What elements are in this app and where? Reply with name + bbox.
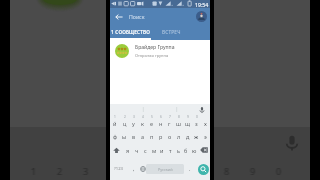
- staticText: ,: [133, 165, 135, 172]
- button[interactable]: х: [201, 115, 210, 129]
- staticText: 3: [82, 165, 88, 175]
- button[interactable]: и: [158, 143, 166, 157]
- staticText: р: [159, 133, 163, 140]
- button[interactable]: м: [150, 143, 158, 157]
- button[interactable]: а: [138, 129, 147, 143]
- button[interactable]: д: [183, 129, 192, 143]
- staticText: 5: [151, 115, 153, 119]
- staticText: ж: [194, 133, 199, 140]
- staticText: у: [132, 120, 135, 127]
- button[interactable]: ?123: [112, 157, 126, 180]
- staticText: 2: [57, 165, 63, 175]
- staticText: 2: [56, 165, 62, 175]
- button[interactable]: Profile: [196, 11, 207, 22]
- button[interactable]: с: [141, 143, 150, 157]
- button[interactable]: в: [129, 129, 138, 143]
- staticText: 9: [249, 165, 255, 175]
- staticText: Брайдер Группа: [135, 44, 175, 51]
- button[interactable]: .: [185, 157, 194, 180]
- button[interactable]: н: [156, 115, 165, 129]
- staticText: т: [169, 147, 172, 154]
- button[interactable]: т: [166, 143, 174, 157]
- staticText: Русский: [158, 167, 173, 172]
- button[interactable]: Change language: [138, 157, 148, 180]
- button[interactable]: б: [182, 143, 190, 157]
- staticText: л: [177, 133, 181, 140]
- button[interactable]: ь: [174, 143, 182, 157]
- button[interactable]: к: [138, 115, 147, 129]
- staticText: п: [150, 133, 154, 140]
- button[interactable]: ы: [120, 129, 129, 143]
- staticText: я: [126, 147, 130, 154]
- button[interactable]: я: [123, 143, 132, 157]
- button[interactable]: Русский: [146, 164, 184, 174]
- staticText: Открытая группа: [135, 53, 169, 58]
- staticText: д: [186, 133, 190, 140]
- staticText: к: [141, 120, 144, 127]
- button[interactable]: Voice input: [197, 105, 206, 114]
- button[interactable]: у: [129, 115, 138, 129]
- button[interactable]: щ: [183, 115, 192, 129]
- staticText: о: [168, 133, 172, 140]
- button[interactable]: Shift: [110, 143, 123, 157]
- button[interactable]: ю: [190, 143, 198, 157]
- button[interactable]: ф: [110, 129, 120, 143]
- staticText: 0: [276, 165, 282, 175]
- staticText: щ: [185, 120, 190, 127]
- staticText: ы: [122, 133, 127, 140]
- button[interactable]: ж: [192, 129, 201, 143]
- staticText: 1: [32, 165, 38, 175]
- button[interactable]: л: [174, 129, 183, 143]
- staticText: 0: [275, 165, 281, 175]
- button[interactable]: й: [110, 115, 120, 129]
- button[interactable]: ч: [132, 143, 141, 157]
- staticText: .: [189, 165, 191, 172]
- staticText: ч: [135, 147, 139, 154]
- button[interactable]: о: [165, 129, 174, 143]
- staticText: 0: [196, 115, 198, 119]
- staticText: 8: [223, 165, 229, 175]
- button[interactable]: 1 СООБЩЕСТВО: [110, 24, 151, 40]
- staticText: 2: [124, 115, 126, 119]
- staticText: н: [159, 120, 163, 127]
- button[interactable]: Search: [198, 164, 209, 175]
- staticText: б: [184, 147, 188, 154]
- staticText: 9: [251, 165, 257, 175]
- staticText: 3: [133, 115, 135, 119]
- staticText: 6: [160, 115, 162, 119]
- staticText: 8: [224, 165, 230, 175]
- button[interactable]: р: [156, 129, 165, 143]
- staticText: э: [204, 133, 207, 140]
- staticText: и: [160, 147, 164, 154]
- staticText: 7: [169, 115, 171, 119]
- staticText: 3: [84, 165, 90, 175]
- staticText: 1: [30, 165, 36, 175]
- button[interactable]: ВСТРЕЧ: [151, 24, 191, 40]
- staticText: 1 СООБЩЕСТВО: [111, 29, 151, 35]
- button[interactable]: ш: [174, 115, 183, 129]
- staticText: ц: [123, 120, 127, 127]
- button[interactable]: п: [147, 129, 156, 143]
- staticText: з: [195, 120, 198, 127]
- staticText: а: [141, 133, 145, 140]
- button[interactable]: ,: [129, 157, 138, 180]
- button[interactable]: ц: [120, 115, 129, 129]
- button[interactable]: э: [201, 129, 210, 143]
- staticText: 9: [187, 115, 189, 119]
- button[interactable]: Брайдер Группа: [110, 40, 210, 61]
- staticText: ?123: [114, 166, 124, 172]
- staticText: 1: [114, 115, 116, 119]
- staticText: 8: [178, 115, 180, 119]
- button[interactable]: е: [147, 115, 156, 129]
- staticText: ф: [113, 133, 118, 140]
- staticText: ш: [176, 120, 181, 127]
- button[interactable]: Backspace: [198, 143, 210, 157]
- staticText: 8: [225, 165, 231, 175]
- staticText: Поиск: [129, 13, 145, 20]
- button[interactable]: з: [192, 115, 201, 129]
- button[interactable]: г: [165, 115, 174, 129]
- button[interactable]: Back: [113, 11, 124, 22]
- staticText: 19:54: [195, 1, 209, 8]
- staticText: х: [204, 120, 207, 127]
- staticText: в: [132, 133, 136, 140]
